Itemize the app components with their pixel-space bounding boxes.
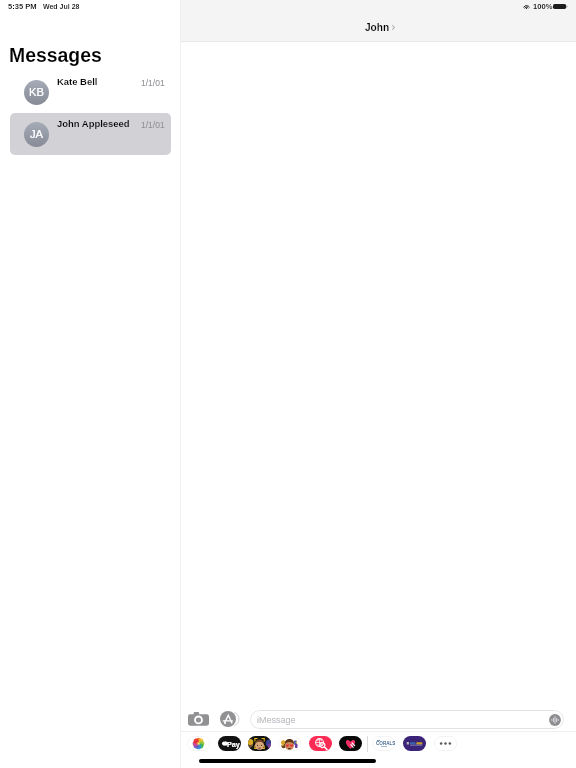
staticText: iMessage: [257, 715, 296, 725]
button[interactable]: Digital Touch: [339, 736, 362, 751]
staticText: 1/1/01: [141, 120, 165, 129]
staticText: John: [365, 22, 390, 33]
button[interactable]: Corals: [372, 736, 395, 751]
staticText: Messages: [9, 44, 102, 66]
button[interactable]: Camera: [188, 711, 209, 726]
button[interactable]: Record audio: [548, 713, 562, 727]
button[interactable]: iMessage: [250, 710, 564, 729]
staticText: Wed Jul 28: [43, 3, 80, 11]
button[interactable]: Photos: [187, 736, 210, 751]
button[interactable]: JA: [10, 113, 171, 155]
button[interactable]: KB: [10, 71, 171, 113]
button[interactable]: App Store: [220, 711, 236, 727]
button[interactable]: Memoji: [248, 736, 271, 751]
button[interactable]: John: [363, 21, 397, 34]
button[interactable]: Apple Pay: [218, 736, 241, 751]
staticText: Kate Bell: [57, 76, 98, 87]
staticText: Pay: [227, 740, 240, 748]
button[interactable]: More: [434, 736, 457, 751]
staticText: CORALS: [376, 741, 396, 746]
staticText: JA: [30, 128, 44, 141]
staticText: 100%: [533, 2, 553, 10]
staticText: John Appleseed: [57, 118, 130, 129]
staticText: 1/1/01: [141, 78, 165, 87]
button[interactable]: Image search: [309, 736, 332, 751]
button[interactable]: Memoji stickers: [278, 736, 301, 751]
button[interactable]: App: [403, 736, 426, 751]
staticText: KB: [29, 86, 44, 99]
staticText: 5:35 PM: [8, 2, 37, 10]
